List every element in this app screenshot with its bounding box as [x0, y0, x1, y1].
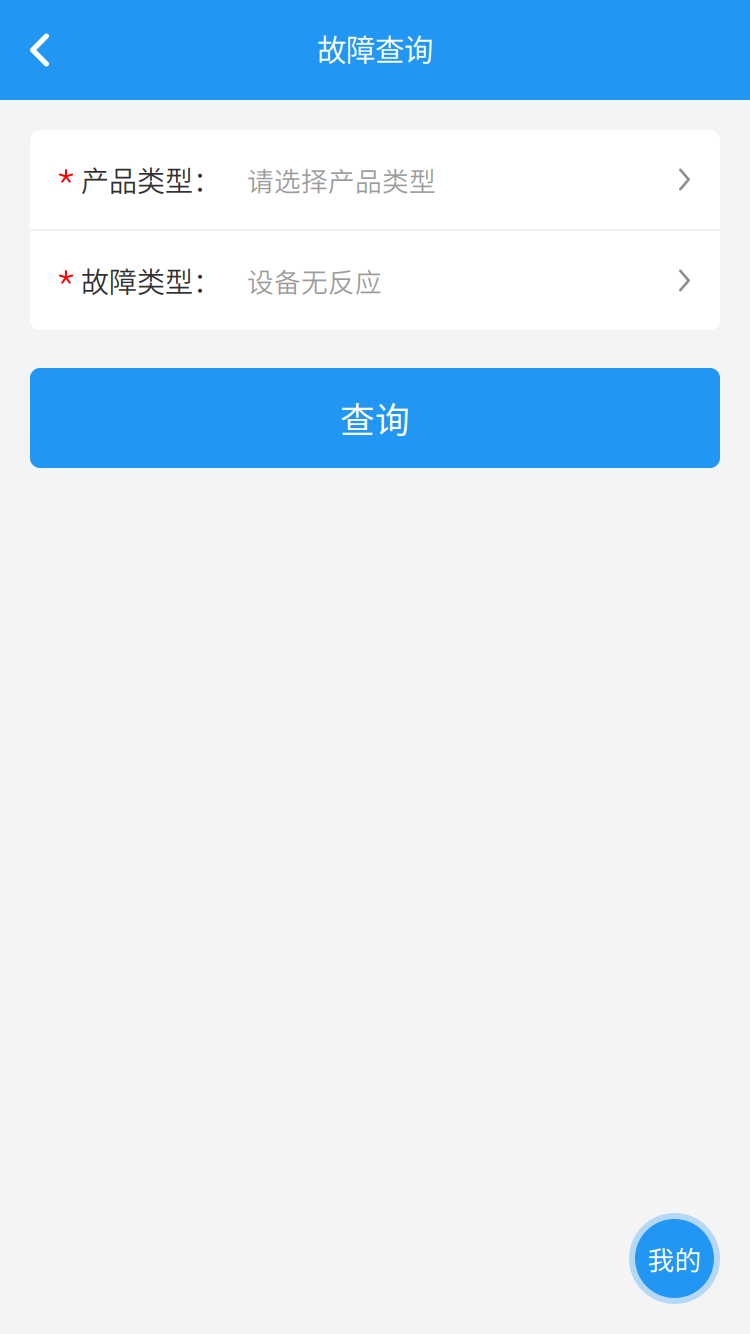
staticText: 故障查询 [317, 27, 433, 69]
staticText: 我的 [647, 1239, 701, 1278]
button[interactable]: 产品类型： [30, 130, 720, 229]
staticText: 故障类型： [81, 260, 221, 301]
staticText: 请选择产品类型 [247, 160, 436, 199]
button[interactable]: 查询 [30, 368, 720, 468]
button[interactable]: 故障类型： [30, 231, 720, 330]
button[interactable]: 我的 [629, 1213, 720, 1304]
button[interactable]: Back [0, 0, 73, 100]
staticText: 查询 [340, 393, 410, 443]
staticText: 设备无反应 [247, 261, 382, 300]
staticText: 产品类型： [81, 159, 221, 200]
